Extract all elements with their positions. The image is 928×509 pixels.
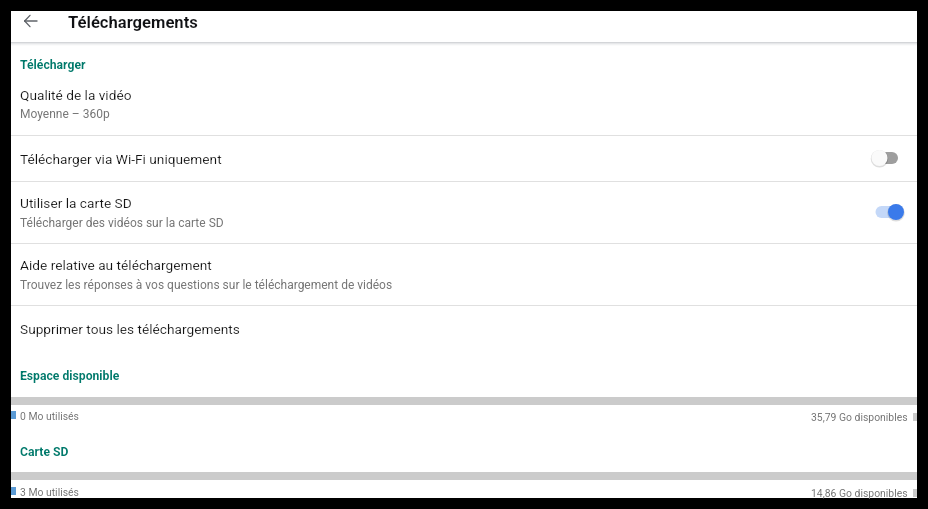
staticText: 3 Mo utilisés bbox=[20, 486, 79, 498]
staticText: Utiliser la carte SD bbox=[20, 195, 132, 211]
staticText: 0 Mo utilisés bbox=[20, 410, 79, 422]
button[interactable]: Back bbox=[14, 10, 46, 31]
button[interactable]: Télécharger via Wi-Fi uniquement bbox=[11, 135, 917, 181]
staticText: Trouvez les réponses à vos questions sur… bbox=[20, 278, 393, 292]
staticText: Télécharger bbox=[20, 58, 86, 72]
button[interactable]: Supprimer tous les téléchargements bbox=[11, 305, 917, 351]
staticText: 14,86 Go disponibles bbox=[811, 487, 908, 499]
staticText: Espace disponible bbox=[20, 369, 120, 383]
staticText: Moyenne – 360p bbox=[20, 107, 110, 121]
button[interactable]: Télécharger via Wi-Fi uniquement bbox=[871, 148, 905, 168]
staticText: 35,79 Go disponibles bbox=[811, 411, 908, 423]
button[interactable]: Qualité de la vidéo bbox=[11, 49, 917, 135]
staticText: Téléchargements bbox=[68, 13, 198, 32]
button[interactable]: Utiliser la carte SD bbox=[11, 181, 917, 243]
button[interactable]: Utiliser la carte SD bbox=[871, 202, 905, 222]
staticText: Aide relative au téléchargement bbox=[20, 257, 212, 273]
staticText: Télécharger des vidéos sur la carte SD bbox=[20, 216, 224, 230]
staticText: Qualité de la vidéo bbox=[20, 87, 132, 103]
staticText: Carte SD bbox=[20, 445, 69, 459]
staticText: Télécharger via Wi-Fi uniquement bbox=[20, 151, 222, 167]
staticText: Supprimer tous les téléchargements bbox=[20, 321, 240, 337]
button[interactable]: Aide relative au téléchargement bbox=[11, 243, 917, 305]
